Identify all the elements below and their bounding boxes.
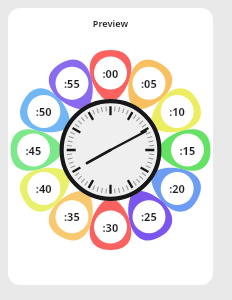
button[interactable]: Watch face preview	[8, 8, 213, 285]
